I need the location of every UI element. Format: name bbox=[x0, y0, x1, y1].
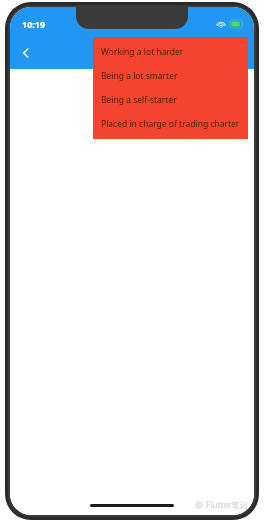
staticText: Flutter笔记 bbox=[206, 499, 248, 510]
staticText: Placed in charge of trading charter bbox=[101, 118, 240, 130]
button[interactable]: Placed in charge of trading charter bbox=[93, 112, 248, 136]
staticText: Working a lot harder bbox=[101, 46, 184, 58]
staticText: Being a self-starter bbox=[101, 94, 177, 106]
button[interactable]: Being a self-starter bbox=[93, 88, 248, 112]
button[interactable]: Back bbox=[10, 37, 42, 69]
staticText: PopupMenu bbox=[100, 46, 165, 61]
staticText: Being a lot smarter bbox=[101, 70, 178, 82]
button[interactable]: Working a lot harder bbox=[93, 40, 248, 64]
button[interactable]: Being a lot smarter bbox=[93, 64, 248, 88]
staticText: 10:19 bbox=[22, 18, 46, 30]
